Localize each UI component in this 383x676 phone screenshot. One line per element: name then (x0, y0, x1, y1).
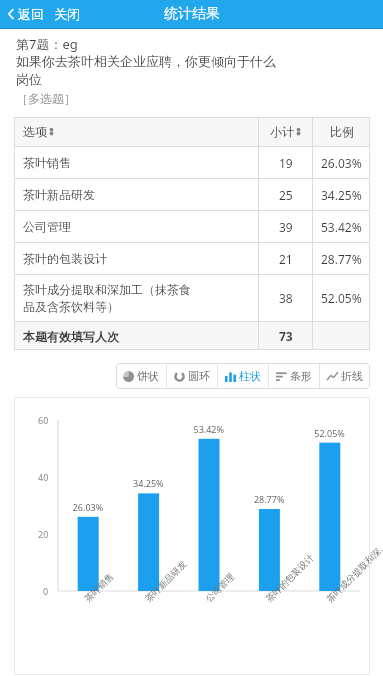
staticText: 53.42% (321, 219, 362, 235)
staticText: ［多选题］ (16, 91, 76, 106)
staticText: 茶叶的包装设计 (23, 251, 107, 266)
staticText: 折线 (341, 369, 363, 383)
other: Back (7, 8, 15, 20)
staticText: 本题有效填写人次 (23, 329, 119, 344)
button[interactable]: Back (4, 3, 47, 25)
button[interactable]: 关闭 (51, 3, 83, 25)
staticText: 26.03% (321, 155, 362, 171)
staticText: 比例 (330, 124, 354, 139)
staticText: 关闭 (54, 6, 80, 22)
staticText: 38 (279, 290, 293, 306)
staticText: 73 (279, 328, 293, 344)
staticText: 返回 (18, 6, 44, 22)
staticText: 52.05% (321, 290, 362, 306)
staticText: 茶叶销售 (23, 155, 71, 170)
staticText: 如果你去茶叶相关企业应聘，你更倾向于什么 岗位 (16, 53, 276, 88)
staticText: 39 (279, 219, 293, 235)
staticText: 圆环 (188, 369, 210, 383)
staticText: 公司管理 (23, 219, 71, 234)
button[interactable]: 圆环 (167, 363, 217, 389)
staticText: 茶叶成分提取和深加工（抹茶食 品及含茶饮料等） (23, 282, 191, 314)
staticText: 条形 (290, 369, 312, 383)
staticText: 茶叶新品研发 (23, 187, 95, 202)
staticText: 34.25% (321, 187, 362, 203)
staticText: 选项 (23, 124, 47, 139)
staticText: 第7题：eg (16, 35, 78, 53)
staticText: 28.77% (321, 251, 362, 267)
staticText: 25 (279, 187, 293, 203)
staticText: 小计 (270, 124, 294, 139)
staticText: 19 (279, 155, 293, 171)
button[interactable]: 折线 (320, 363, 370, 389)
button[interactable]: 柱状 (218, 363, 268, 389)
staticText: 饼状 (137, 369, 159, 383)
staticText: 21 (279, 251, 293, 267)
staticText: 柱状 (239, 369, 261, 383)
staticText: 统计结果 (164, 5, 220, 23)
button[interactable]: 条形 (269, 363, 319, 389)
button[interactable]: 饼状 (116, 363, 166, 389)
